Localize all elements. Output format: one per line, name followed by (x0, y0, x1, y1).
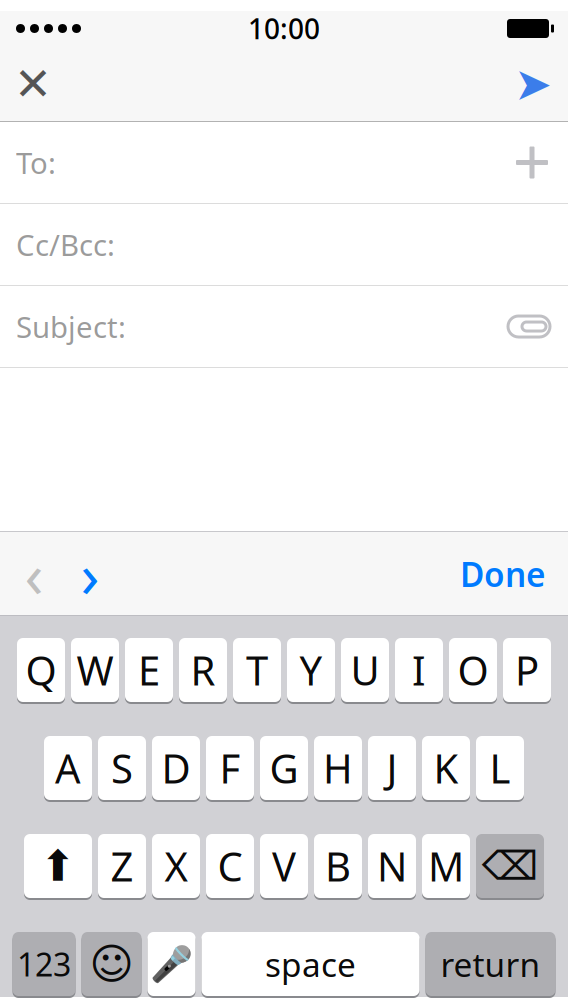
staticText: I (412, 643, 426, 696)
button[interactable]: Cc/Bcc: (0, 204, 568, 286)
button[interactable]: return (425, 931, 555, 997)
button[interactable]: I (395, 637, 443, 703)
staticText: P (515, 643, 539, 696)
staticText: X (164, 839, 187, 892)
staticText: W (76, 643, 113, 696)
button[interactable]: U (341, 637, 389, 703)
staticText: D (161, 741, 190, 794)
staticText: K (433, 741, 458, 794)
button[interactable]: Done (444, 544, 562, 604)
staticText: Q (25, 643, 56, 696)
staticText: C (217, 839, 242, 892)
button[interactable]: J (368, 735, 416, 801)
staticText: L (489, 741, 510, 794)
button[interactable]: A (44, 735, 92, 801)
button[interactable]: Shift (24, 833, 92, 899)
button[interactable]: Q (17, 637, 65, 703)
staticText: ☺ (89, 940, 133, 988)
button[interactable]: Delete (476, 833, 544, 899)
staticText: A (55, 741, 81, 794)
staticText: F (219, 741, 240, 794)
button[interactable]: L (476, 735, 524, 801)
button[interactable]: Close (4, 55, 62, 113)
staticText: S (111, 741, 133, 794)
staticText: U (350, 643, 379, 696)
staticText: E (138, 643, 160, 696)
button[interactable]: M (422, 833, 470, 899)
button[interactable]: Dictate (147, 931, 195, 997)
staticText: R (190, 643, 215, 696)
button[interactable]: D (152, 735, 200, 801)
staticText: T (246, 643, 268, 696)
button[interactable] (0, 368, 568, 532)
staticText: Y (299, 643, 322, 696)
button[interactable]: Z (98, 833, 146, 899)
staticText: ➤ (514, 58, 552, 110)
staticText: Done (460, 552, 546, 596)
button[interactable]: X (152, 833, 200, 899)
staticText: Subject: (16, 307, 126, 346)
staticText: N (377, 839, 407, 892)
staticText: 10:00 (248, 10, 320, 47)
button[interactable]: H (314, 735, 362, 801)
button[interactable]: Previous field (6, 544, 62, 604)
staticText: ✕ (14, 58, 52, 110)
button[interactable]: T (233, 637, 281, 703)
staticText: ⌫ (481, 843, 538, 889)
button[interactable]: B (314, 833, 362, 899)
button[interactable]: Emoji (81, 931, 141, 997)
staticText: › (80, 533, 99, 615)
button[interactable]: N (368, 833, 416, 899)
button[interactable]: K (422, 735, 470, 801)
staticText: V (272, 839, 296, 892)
staticText: To: (16, 143, 56, 182)
button[interactable]: 123 (12, 931, 75, 997)
button[interactable]: E (125, 637, 173, 703)
button[interactable]: C (206, 833, 254, 899)
staticText: O (457, 643, 488, 696)
button[interactable]: Next field (62, 544, 118, 604)
button[interactable]: W (71, 637, 119, 703)
button[interactable]: Subject: (0, 286, 568, 368)
button[interactable]: O (449, 637, 497, 703)
button[interactable]: G (260, 735, 308, 801)
staticText: G (269, 741, 298, 794)
staticText: Cc/Bcc: (16, 225, 115, 264)
button[interactable]: To: (0, 122, 568, 204)
staticText: ⬆ (40, 842, 76, 890)
staticText: J (386, 741, 397, 794)
button[interactable]: R (179, 637, 227, 703)
button[interactable]: space (201, 931, 419, 997)
button[interactable]: F (206, 735, 254, 801)
button[interactable]: P (503, 637, 551, 703)
button[interactable]: Send (502, 55, 564, 113)
staticText: H (323, 741, 353, 794)
staticText: B (325, 839, 351, 892)
staticText: return (440, 942, 540, 986)
staticText: M (428, 839, 464, 892)
button[interactable]: S (98, 735, 146, 801)
staticText: Z (110, 839, 133, 892)
staticText: 🎤 (150, 944, 193, 984)
staticText: ‹ (24, 533, 43, 615)
button[interactable]: Y (287, 637, 335, 703)
staticText: 123 (17, 943, 71, 985)
staticText: space (265, 942, 356, 986)
button[interactable]: V (260, 833, 308, 899)
